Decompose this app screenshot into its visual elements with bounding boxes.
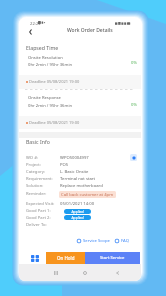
staticText: Call back customer at 4pm	[61, 192, 114, 198]
button[interactable]: Service Scope	[77, 238, 110, 244]
staticText: On Hold	[57, 255, 75, 261]
staticText: Service Scope	[83, 238, 110, 244]
staticText: Solution:	[26, 183, 44, 189]
staticText: Start Service	[100, 255, 125, 261]
staticText: Applied	[71, 209, 84, 214]
button[interactable]: Home	[79, 265, 91, 280]
staticText: Replace motherboard	[60, 183, 103, 189]
staticText: Deadline 05/08/2021 19:00	[29, 120, 80, 125]
staticText: Good Part 1:	[26, 208, 51, 214]
button[interactable]: Applied	[64, 209, 91, 214]
staticText: Deliver To:	[26, 222, 47, 228]
button[interactable]: Back	[111, 265, 123, 280]
staticText: 22:27	[30, 21, 41, 27]
staticText: 05/01/2021 14:00	[60, 201, 95, 207]
staticText: 0hr 2min / 95hr 36min	[28, 103, 73, 109]
staticText: Reminder:	[26, 191, 47, 197]
staticText: L. Basic Onsite	[60, 169, 89, 175]
staticText: Category:	[26, 169, 45, 175]
staticText: Onsite Response	[28, 95, 61, 101]
staticText: WO #:	[26, 155, 39, 161]
staticText: Expected Visit:	[26, 201, 55, 207]
button[interactable]: Applied	[64, 215, 91, 220]
staticText: 0hr 2min / 95hr 36min	[28, 62, 73, 68]
staticText: WPOS0004997	[60, 155, 89, 161]
button[interactable]: Recents	[50, 265, 62, 280]
button[interactable]: More actions	[28, 251, 42, 265]
staticText: Requirement:	[26, 176, 53, 182]
staticText: POS	[60, 162, 69, 168]
staticText: Good Part 2:	[26, 215, 51, 221]
button[interactable]: Back	[24, 25, 37, 38]
staticText: Work Order Details	[67, 27, 113, 34]
button[interactable]: FAQ	[115, 238, 129, 244]
staticText: Elapsed Time	[26, 44, 59, 51]
staticText: 0%	[131, 60, 137, 66]
staticText: 0%	[131, 102, 137, 108]
staticText: Onsite Resolution	[28, 55, 63, 61]
button[interactable]: Start Service	[85, 252, 140, 264]
staticText: Applied	[71, 215, 84, 220]
staticText: Basic Info	[26, 138, 50, 145]
staticText: FAQ	[121, 238, 129, 244]
button[interactable]: On Hold	[46, 252, 86, 264]
staticText: Deadline 05/08/2021 19:00	[29, 79, 80, 84]
button[interactable]: Copy work order number	[130, 154, 137, 161]
staticText: Project:	[26, 162, 41, 168]
staticText: Terminal not start	[60, 176, 96, 182]
